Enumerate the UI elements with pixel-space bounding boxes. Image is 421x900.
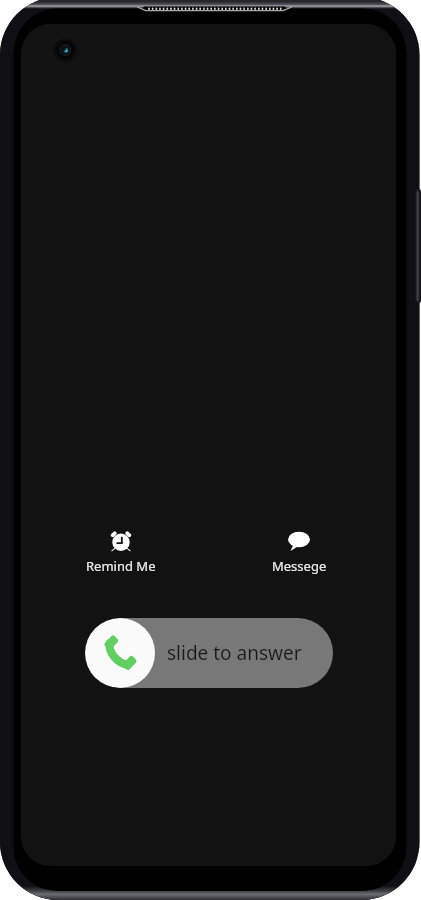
- button[interactable]: Messege: [239, 530, 359, 575]
- staticText: Messege: [272, 557, 327, 575]
- staticText: Remind Me: [86, 557, 156, 575]
- button[interactable]: slide to answer: [85, 618, 333, 688]
- button[interactable]: Remind Me: [61, 530, 181, 575]
- staticText: slide to answer: [167, 640, 302, 666]
